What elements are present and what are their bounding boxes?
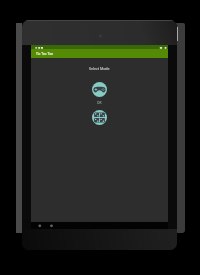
button[interactable]: Play single player xyxy=(92,82,107,97)
staticText: OR xyxy=(97,101,102,105)
button[interactable]: Play multiplayer xyxy=(92,110,107,125)
button[interactable]: Tic Tac Toe xyxy=(31,49,168,58)
staticText: Select Mode xyxy=(89,66,110,71)
staticText: Tic Tac Toe xyxy=(36,51,54,56)
